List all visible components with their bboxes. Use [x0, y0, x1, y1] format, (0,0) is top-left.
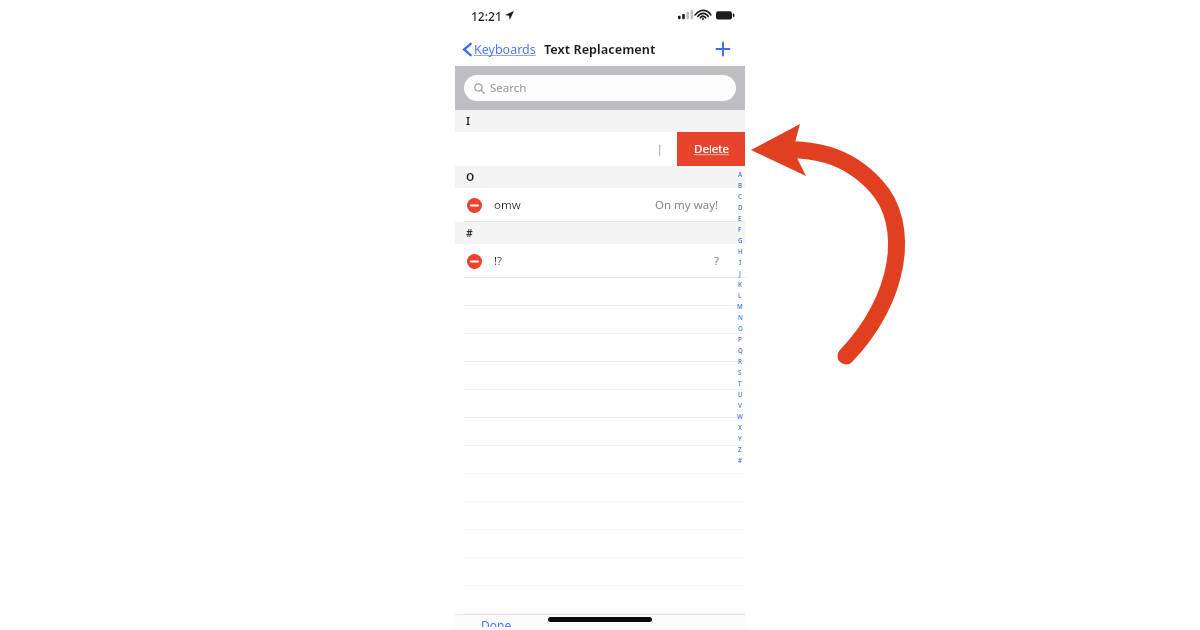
button[interactable]: Alphabet index	[734, 170, 746, 467]
staticText: N	[738, 313, 743, 324]
staticText: Keyboards	[474, 41, 536, 58]
staticText: I	[739, 258, 742, 269]
staticText: Text Replacement	[544, 41, 656, 58]
staticText: Search	[490, 80, 527, 96]
button[interactable]: omw	[455, 188, 745, 222]
staticText: Q	[738, 346, 743, 357]
staticText: I	[466, 114, 471, 128]
staticText: |	[657, 142, 663, 156]
staticText: F	[738, 225, 742, 236]
button[interactable]: Search	[464, 75, 736, 101]
staticText: L	[738, 291, 742, 302]
staticText: S	[738, 368, 742, 379]
button[interactable]: Delete	[677, 132, 745, 166]
staticText: ?	[714, 253, 719, 269]
staticText: R	[738, 357, 742, 368]
staticText: On my way!	[655, 197, 719, 213]
staticText: G	[738, 236, 743, 247]
button[interactable]: Add text replacement	[709, 35, 737, 63]
staticText: Z	[738, 445, 742, 456]
staticText: B	[738, 181, 743, 192]
staticText: A	[738, 170, 743, 181]
staticText: O	[466, 170, 475, 184]
staticText: #	[738, 456, 742, 467]
button[interactable]: Done	[477, 614, 516, 630]
staticText: H	[738, 247, 743, 258]
staticText: #	[466, 226, 473, 240]
staticText: omw	[494, 197, 521, 213]
staticText: D	[738, 203, 743, 214]
staticText: K	[738, 280, 743, 291]
staticText: P	[738, 335, 742, 346]
staticText: X	[738, 423, 742, 434]
button[interactable]: !?	[455, 244, 745, 278]
staticText: !?	[494, 253, 503, 269]
staticText: M	[737, 302, 743, 313]
staticText: U	[738, 390, 743, 401]
staticText: Done	[481, 617, 512, 627]
staticText: C	[738, 192, 742, 203]
staticText: J	[739, 269, 741, 280]
staticText: T	[738, 379, 742, 390]
staticText: Delete	[694, 141, 729, 157]
staticText: O	[738, 324, 743, 335]
staticText: V	[738, 401, 742, 412]
staticText: Y	[738, 434, 742, 445]
staticText: E	[738, 214, 742, 225]
staticText: 12:21	[471, 8, 502, 24]
staticText: W	[737, 412, 743, 423]
button[interactable]: Keyboards	[460, 37, 539, 62]
